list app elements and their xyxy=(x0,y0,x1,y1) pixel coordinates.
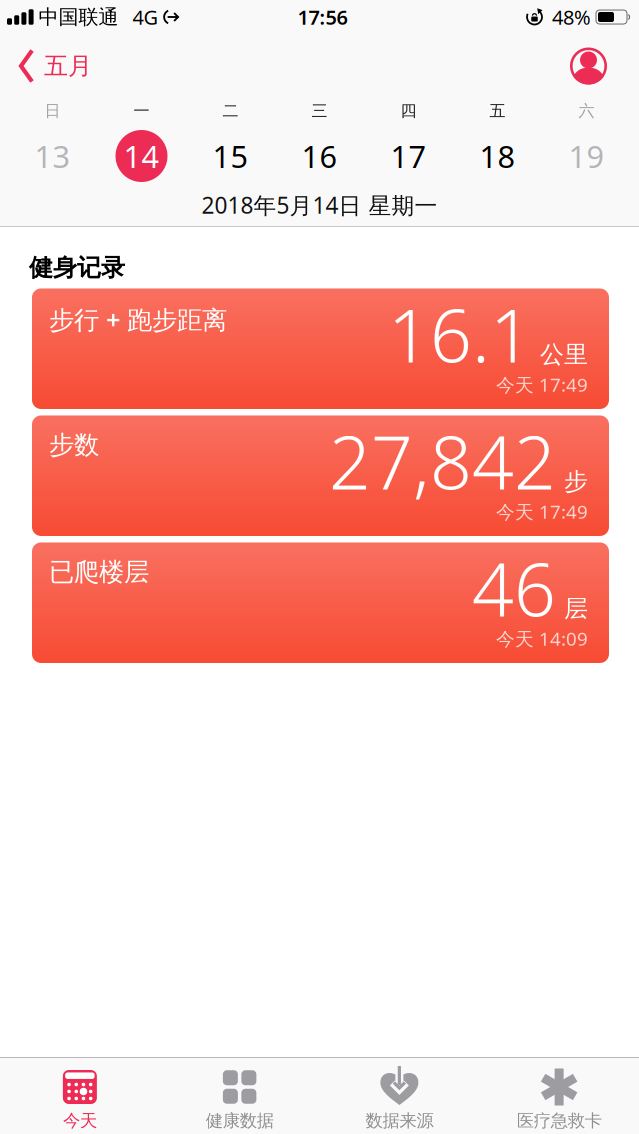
staticText: 公里 xyxy=(540,340,588,369)
staticText: 医疗急救卡 xyxy=(517,1110,602,1131)
button[interactable]: 医疗急救卡 xyxy=(479,1070,639,1131)
staticText: 今天 14:09 xyxy=(496,626,588,651)
staticText: 27,842 xyxy=(329,412,556,510)
button[interactable]: 5月15日 xyxy=(186,124,275,188)
staticText: 48% xyxy=(552,4,591,30)
staticText: 今天 17:49 xyxy=(496,372,588,397)
staticText: 四 xyxy=(400,101,416,121)
button[interactable]: 5月18日 xyxy=(453,124,542,188)
button[interactable]: 返回五月 xyxy=(0,49,92,83)
staticText: 17:56 xyxy=(297,4,347,30)
button[interactable]: 已爬楼层 xyxy=(32,542,609,663)
button[interactable]: 5月16日 xyxy=(275,124,364,188)
button[interactable]: 数据来源 xyxy=(319,1070,479,1131)
staticText: 46 xyxy=(472,539,556,637)
staticText: 18 xyxy=(479,136,515,176)
staticText: 已爬楼层 xyxy=(49,556,149,588)
staticText: 16.1 xyxy=(388,285,532,383)
staticText: 健身记录 xyxy=(29,253,125,282)
staticText: 16 xyxy=(301,136,337,176)
staticText: 14 xyxy=(123,136,159,176)
staticText: 17 xyxy=(390,136,426,176)
staticText: 五 xyxy=(489,101,505,121)
button[interactable]: 5月14日 xyxy=(97,124,186,188)
button[interactable]: 健康数据 xyxy=(160,1070,320,1131)
button[interactable]: 个人资料 xyxy=(570,47,639,84)
button[interactable]: 5月13日 xyxy=(8,124,97,188)
staticText: 数据来源 xyxy=(365,1110,433,1131)
staticText: 19 xyxy=(568,136,604,176)
button[interactable]: 5月19日 xyxy=(542,124,631,188)
staticText: 六 xyxy=(578,101,594,121)
staticText: 日 xyxy=(44,101,60,121)
staticText: 步 xyxy=(564,467,588,496)
staticText: 一 xyxy=(133,101,149,121)
staticText: 二 xyxy=(222,101,238,121)
staticText: 步数 xyxy=(49,429,99,461)
staticText: 步行 + 跑步距离 xyxy=(49,302,227,336)
staticText: 今天 17:49 xyxy=(496,499,588,524)
button[interactable]: 步行 + 跑步距离 xyxy=(32,288,609,409)
staticText: 五月 xyxy=(44,51,92,81)
staticText: 2018年5月14日 星期一 xyxy=(201,190,437,220)
staticText: 13 xyxy=(34,136,70,176)
staticText: 层 xyxy=(564,594,588,623)
button[interactable]: 今天 xyxy=(0,1070,160,1131)
staticText: 健康数据 xyxy=(206,1110,274,1131)
staticText: 今天 xyxy=(63,1110,97,1131)
staticText: 中国联通 xyxy=(39,5,119,29)
staticText: 三 xyxy=(311,101,327,121)
staticText: 15 xyxy=(212,136,248,176)
staticText: 4G xyxy=(133,4,159,30)
button[interactable]: 步数 xyxy=(32,415,609,536)
button[interactable]: 5月17日 xyxy=(364,124,453,188)
